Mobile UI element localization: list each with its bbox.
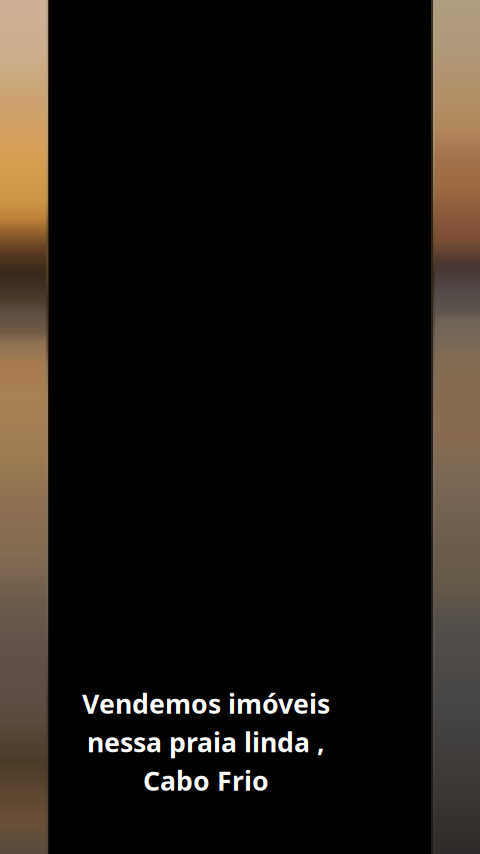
staticText: nessa praia linda , [87, 724, 325, 760]
button[interactable]: Play video [49, 0, 431, 854]
staticText: Cabo Frio [143, 763, 269, 798]
staticText: Vendemos imóveis [82, 686, 330, 721]
